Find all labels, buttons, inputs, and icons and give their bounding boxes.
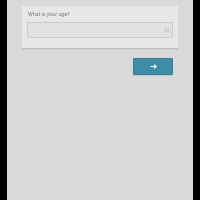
- button[interactable]: Next: [133, 58, 173, 75]
- button[interactable]: Select age: [27, 22, 173, 38]
- staticText: What is your age?: [28, 11, 70, 18]
